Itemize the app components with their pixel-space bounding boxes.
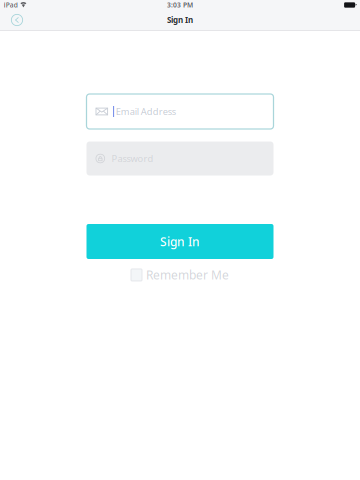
button[interactable]: Sign In: [86, 224, 273, 259]
staticText: Email Address: [116, 105, 176, 118]
button[interactable]: Back: [5, 10, 28, 30]
button[interactable]: Remember Me: [131, 267, 229, 283]
staticText: Sign In: [167, 15, 193, 25]
staticText: iPad: [4, 1, 18, 9]
staticText: Password: [112, 152, 154, 165]
staticText: Sign In: [160, 233, 200, 249]
staticText: Remember Me: [146, 267, 229, 283]
staticText: 3:03 PM: [167, 1, 193, 9]
